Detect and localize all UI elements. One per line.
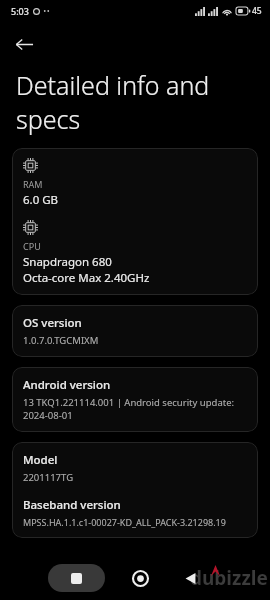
- staticText: RAM: [23, 178, 43, 190]
- staticText: dubizzle: [190, 565, 268, 591]
- staticText: 45: [252, 5, 262, 17]
- staticText: Baseband version: [23, 497, 121, 513]
- button[interactable]: Home: [127, 565, 153, 591]
- staticText: Snapdragon 680 Octa-core Max 2.40GHz: [23, 254, 150, 285]
- button[interactable]: Back: [177, 565, 203, 591]
- staticText: 5:03: [11, 5, 29, 17]
- staticText: 6.0 GB: [23, 192, 59, 208]
- button[interactable]: Back: [6, 26, 42, 62]
- staticText: 13 TKQ1.221114.001 | Android security up…: [23, 396, 235, 422]
- staticText: Model: [23, 452, 58, 468]
- staticText: MPSS.HA.1.1.c1-00027-KD_ALL_PACK-3.21298…: [23, 516, 226, 528]
- staticText: 1.0.7.0.TGCMIXM: [23, 334, 99, 347]
- staticText: 2201117TG: [23, 471, 74, 484]
- button[interactable]: Model: [12, 442, 258, 538]
- staticText: CPU: [23, 240, 41, 252]
- button[interactable]: Android version: [12, 367, 258, 432]
- button[interactable]: Recents: [48, 564, 105, 592]
- staticText: OS version: [23, 315, 82, 331]
- staticText: Detailed info and specs: [16, 68, 248, 136]
- staticText: Android version: [23, 377, 111, 393]
- button[interactable]: OS version: [12, 305, 258, 357]
- button[interactable]: RAM: [12, 148, 258, 295]
